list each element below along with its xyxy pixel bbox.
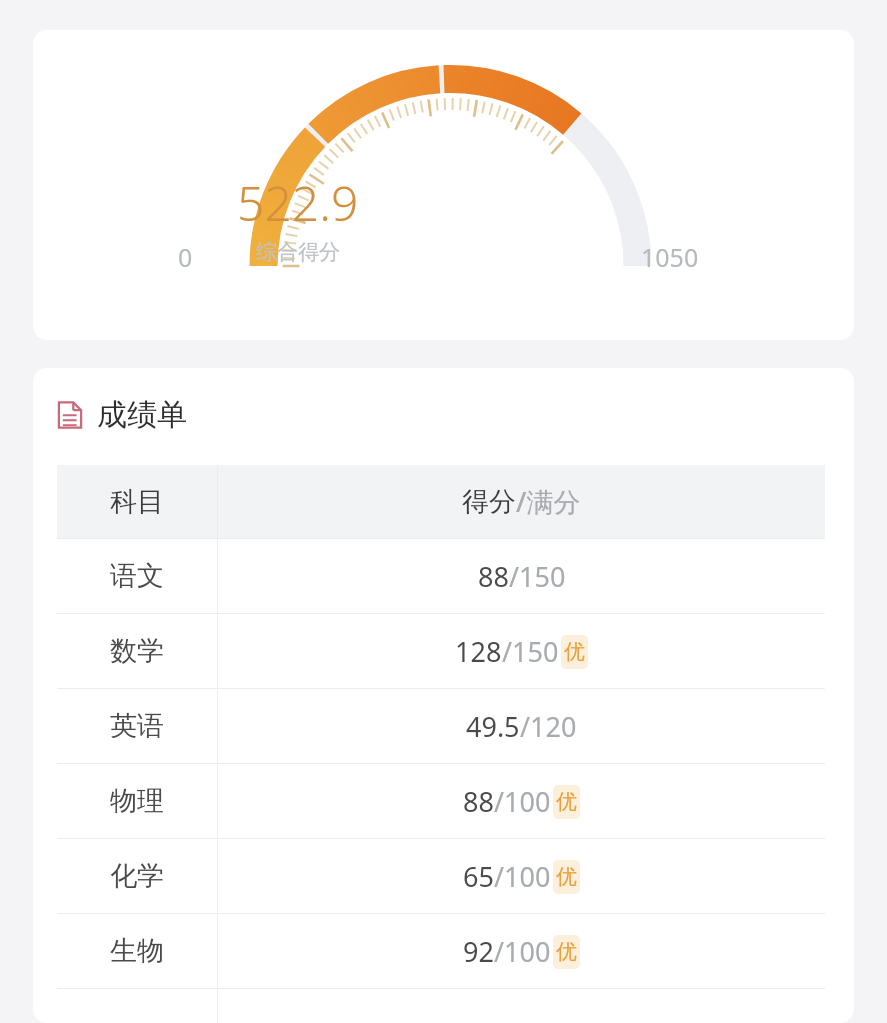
staticText: 92 [463,933,494,970]
button[interactable]: 科目 [57,465,825,538]
staticText: 语文 [110,559,164,593]
staticText: 优 [556,789,577,815]
staticText: /100 [494,933,551,970]
staticText: 88 [478,558,509,595]
button[interactable]: Report [55,396,187,434]
button[interactable]: 数学 [57,614,825,688]
staticText: /满分 [516,483,581,520]
staticText: 化学 [110,859,164,893]
staticText: 得分 [462,485,516,519]
button[interactable]: 物理 [57,764,825,838]
staticText: 优 [556,864,577,890]
staticText: 88 [463,783,494,820]
staticText: 优 [556,939,577,965]
staticText: 65 [463,858,494,895]
staticText: 物理 [110,784,164,818]
button[interactable]: 英语 [57,689,825,763]
staticText: /150 [509,558,566,595]
staticText: 128 [455,633,502,670]
staticText: 生物 [110,934,164,968]
staticText: /120 [520,708,577,745]
staticText: 522.9 [237,170,359,235]
staticText: 1050 [641,240,699,274]
staticText: 优 [564,639,585,665]
button[interactable]: 522.9 [33,30,854,340]
button[interactable]: 语文 [57,539,825,613]
staticText: 0 [178,240,193,274]
other: Report [55,400,85,430]
staticText: 数学 [110,634,164,668]
staticText: 49.5 [466,708,520,745]
staticText: /100 [494,858,551,895]
button[interactable]: 化学 [57,839,825,913]
staticText: /100 [494,783,551,820]
staticText: 英语 [110,709,164,743]
staticText: /150 [502,633,559,670]
staticText: 成绩单 [97,396,187,434]
staticText: 科目 [110,485,164,519]
staticText: 综合得分 [256,239,340,265]
button[interactable]: 生物 [57,914,825,988]
